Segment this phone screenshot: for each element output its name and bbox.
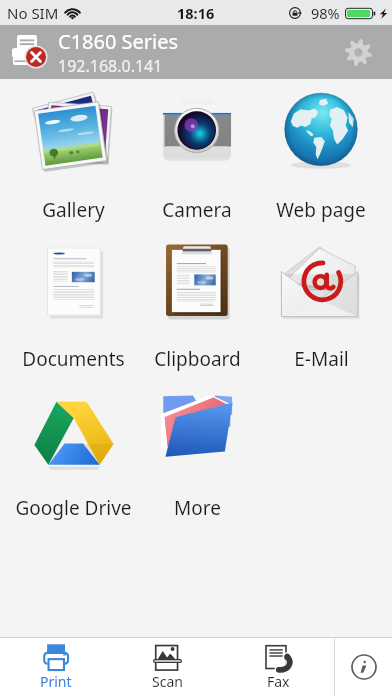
staticText: More [174, 495, 221, 521]
button[interactable]: Gallery [12, 79, 135, 228]
button[interactable]: E-Mail [259, 228, 383, 377]
staticText: Scan [152, 672, 183, 691]
staticText: C1860 Series [58, 28, 179, 55]
staticText: E-Mail [294, 346, 349, 372]
staticText: Camera [162, 197, 232, 223]
staticText: No SIM [7, 3, 59, 23]
button[interactable]: Settings [331, 25, 385, 79]
button[interactable]: Clipboard [135, 228, 259, 377]
staticText: Print [40, 672, 72, 691]
button[interactable]: More [135, 377, 259, 526]
button[interactable]: Scan [112, 638, 223, 696]
staticText: Google Drive [15, 495, 132, 521]
button[interactable]: Google Drive [12, 377, 135, 526]
button[interactable]: Info [335, 638, 392, 696]
button[interactable]: Documents [12, 228, 135, 377]
staticText: Documents [22, 346, 125, 372]
staticText: 192.168.0.141 [58, 55, 163, 77]
staticText: Clipboard [154, 346, 241, 372]
staticText: Fax [267, 672, 290, 691]
staticText: 98% [311, 3, 340, 23]
button[interactable]: Print [0, 638, 112, 696]
button[interactable]: Camera [135, 79, 259, 228]
staticText: Gallery [42, 197, 105, 223]
button[interactable]: Fax [223, 638, 334, 696]
button[interactable]: Web page [259, 79, 383, 228]
staticText: 18:16 [177, 3, 215, 23]
staticText: Web page [276, 197, 366, 223]
